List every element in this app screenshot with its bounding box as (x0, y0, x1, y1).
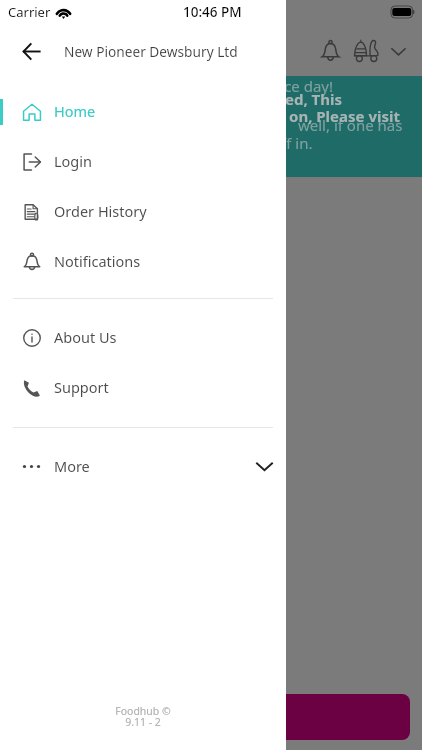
staticText: well, if one has (298, 115, 403, 135)
staticText: More (54, 456, 90, 476)
button[interactable]: Support (0, 363, 286, 413)
button[interactable] (286, 694, 410, 740)
button[interactable]: Delivery (349, 34, 383, 68)
staticText: Foodhub © (115, 704, 171, 718)
button[interactable]: More (0, 443, 286, 489)
staticText: Notifications (54, 251, 141, 271)
staticText: 10:46 PM (183, 3, 242, 21)
button[interactable]: Notifications (0, 237, 286, 287)
staticText: Carrier (8, 3, 51, 21)
staticText: ed, This (285, 89, 343, 109)
staticText: off in. (272, 133, 313, 153)
button[interactable]: Order History (0, 187, 286, 237)
button[interactable]: Login (0, 137, 286, 187)
button[interactable]: Expand (383, 36, 413, 66)
staticText: on, Please visit (289, 106, 400, 126)
staticText: Support (54, 377, 109, 397)
staticText: Home (54, 101, 96, 121)
staticText: Order History (54, 201, 147, 221)
staticText: Login (54, 151, 92, 171)
staticText: About Us (54, 327, 117, 347)
button[interactable]: Home (0, 87, 286, 137)
button[interactable]: About Us (0, 313, 286, 363)
staticText: nice day! (271, 76, 334, 96)
button[interactable]: Back (8, 24, 55, 79)
staticText: New Pioneer Dewsbury Ltd (64, 42, 238, 61)
staticText: 9.11 - 2 (125, 715, 161, 729)
button[interactable]: Notifications (313, 34, 347, 68)
